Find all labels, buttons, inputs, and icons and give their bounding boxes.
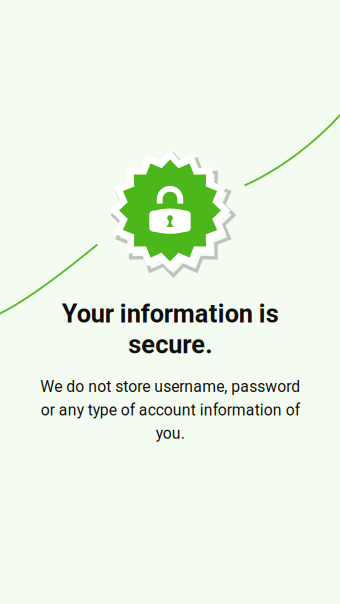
staticText: Your information is secure. [61, 299, 278, 359]
staticText: We do not store username, password or an… [40, 377, 300, 443]
